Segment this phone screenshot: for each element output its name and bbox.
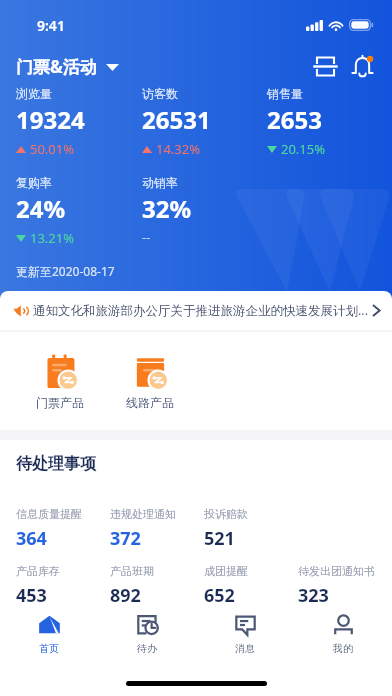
- staticText: 信息质量提醒: [16, 507, 82, 521]
- staticText: 13.21%: [30, 229, 75, 247]
- staticText: 首页: [39, 642, 59, 655]
- staticText: 26531: [142, 103, 211, 136]
- button[interactable]: 首页: [0, 605, 98, 663]
- button[interactable]: 成团提醒: [204, 564, 298, 608]
- button[interactable]: 违规处理通知: [110, 507, 204, 551]
- staticText: 892: [110, 583, 141, 608]
- staticText: 复购率: [16, 175, 52, 190]
- staticText: 访客数: [142, 86, 178, 101]
- staticText: 通知文化和旅游部办公厅关于推进旅游企业的快速发展计划...: [33, 302, 369, 319]
- button[interactable]: 线路产品: [105, 354, 195, 410]
- staticText: 门票&活动: [16, 55, 97, 78]
- button[interactable]: 投诉赔款: [204, 507, 298, 551]
- staticText: 待办: [137, 642, 157, 655]
- staticText: 453: [16, 583, 47, 608]
- staticText: 线路产品: [126, 395, 174, 410]
- staticText: 投诉赔款: [204, 507, 248, 521]
- staticText: 2653: [267, 103, 322, 136]
- button[interactable]: 消息: [196, 605, 294, 663]
- staticText: 成团提醒: [204, 564, 248, 578]
- staticText: 违规处理通知: [110, 507, 176, 521]
- staticText: 20.15%: [281, 140, 326, 158]
- button[interactable]: 信息质量提醒: [16, 507, 110, 551]
- button[interactable]: 产品库存: [16, 564, 110, 608]
- staticText: 待处理事项: [16, 454, 96, 474]
- button[interactable]: Switch layout: [304, 45, 346, 87]
- button[interactable]: 门票产品: [15, 354, 105, 410]
- staticText: 浏览量: [16, 86, 52, 101]
- staticText: 消息: [235, 642, 255, 655]
- staticText: 产品库存: [16, 564, 60, 578]
- staticText: 364: [16, 526, 47, 551]
- staticText: 门票产品: [36, 395, 84, 410]
- button[interactable]: 我的: [294, 605, 392, 663]
- staticText: 销售量: [267, 86, 303, 101]
- button[interactable]: 产品班期: [110, 564, 204, 608]
- staticText: 动销率: [142, 175, 178, 190]
- staticText: 652: [204, 583, 235, 608]
- staticText: 323: [298, 583, 329, 608]
- staticText: 19324: [16, 103, 85, 136]
- staticText: 更新至2020-08-17: [16, 263, 115, 279]
- staticText: 521: [204, 526, 235, 551]
- button[interactable]: Notifications: [341, 45, 383, 87]
- staticText: 24%: [16, 192, 66, 225]
- staticText: 我的: [333, 642, 353, 655]
- button[interactable]: 待办: [98, 605, 196, 663]
- staticText: 待发出团通知书: [298, 564, 375, 578]
- staticText: 14.32%: [156, 140, 201, 158]
- staticText: 32%: [142, 192, 192, 225]
- button[interactable]: 通知文化和旅游部办公厅关于推进旅游企业的快速发展计划...: [0, 291, 392, 330]
- staticText: --: [142, 228, 151, 246]
- staticText: 372: [110, 526, 141, 551]
- button[interactable]: 待发出团通知书: [298, 564, 392, 608]
- staticText: 50.01%: [30, 140, 75, 158]
- staticText: 9:41: [37, 16, 65, 35]
- button[interactable]: 门票&活动: [0, 50, 129, 83]
- staticText: 产品班期: [110, 564, 154, 578]
